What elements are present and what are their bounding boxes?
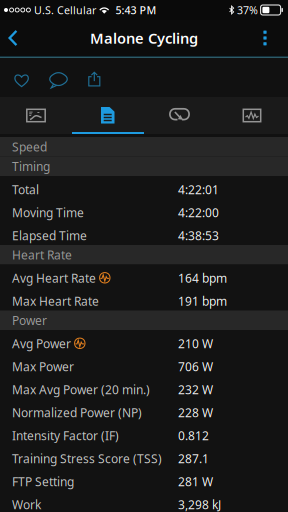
- button[interactable]: Share: [77, 55, 113, 99]
- staticText: Avg Heart Rate: [12, 270, 96, 286]
- staticText: Moving Time: [12, 204, 84, 220]
- button[interactable]: Like: [0, 55, 40, 100]
- staticText: 228 W: [178, 404, 213, 420]
- button[interactable]: Comment: [40, 54, 77, 100]
- button[interactable]: Charts: [216, 97, 288, 134]
- button[interactable]: Map: [0, 97, 72, 134]
- staticText: Max Heart Rate: [12, 293, 99, 309]
- staticText: 281 W: [178, 473, 213, 489]
- staticText: Intensity Factor (IF): [12, 427, 119, 443]
- staticText: Timing: [12, 158, 50, 174]
- staticText: 706 W: [178, 358, 213, 374]
- button[interactable]: Summary: [72, 97, 144, 134]
- button[interactable]: Laps: [144, 97, 216, 134]
- staticText: 4:38:53: [178, 227, 219, 243]
- staticText: Power: [12, 312, 47, 328]
- staticText: Heart Rate: [12, 247, 72, 263]
- staticText: Normalized Power (NP): [12, 404, 142, 420]
- staticText: 4:22:00: [178, 204, 219, 220]
- staticText: Training Stress Score (TSS): [12, 450, 162, 466]
- staticText: Speed: [12, 139, 47, 155]
- staticText: 210 W: [178, 335, 213, 351]
- staticText: Avg Power: [12, 335, 71, 351]
- staticText: 232 W: [178, 381, 213, 397]
- staticText: 191 bpm: [178, 293, 227, 309]
- staticText: Malone Cycling: [90, 28, 198, 48]
- staticText: 0.812: [178, 427, 209, 443]
- staticText: U.S. Cellular: [34, 3, 96, 17]
- button[interactable]: More options: [251, 20, 288, 56]
- staticText: 4:22:01: [178, 181, 219, 197]
- staticText: 164 bpm: [178, 270, 227, 286]
- staticText: 37%: [237, 3, 258, 17]
- staticText: Total: [12, 181, 39, 197]
- staticText: 5:43 PM: [115, 3, 156, 17]
- button[interactable]: Back: [0, 20, 38, 56]
- staticText: Work: [12, 496, 41, 512]
- staticText: Max Avg Power (20 min.): [12, 381, 150, 397]
- staticText: 3,298 kJ: [178, 496, 221, 512]
- staticText: FTP Setting: [12, 473, 74, 489]
- staticText: Max Power: [12, 358, 74, 374]
- staticText: Elapsed Time: [12, 227, 87, 243]
- staticText: 287.1: [178, 450, 209, 466]
